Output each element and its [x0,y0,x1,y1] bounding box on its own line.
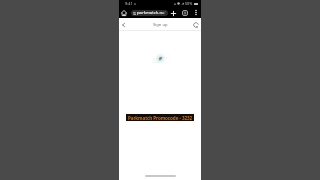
staticText: Sign up [153,22,168,28]
button[interactable]: Parkmatch Promocode - 3232 [126,114,194,121]
button[interactable]: Home [120,9,128,17]
staticText: 50% [185,1,193,6]
staticText: /signup [164,10,168,16]
button[interactable]: New tab [169,9,177,17]
button[interactable]: parkmatch.ru [131,10,168,16]
staticText: parkmatch.ru [137,10,164,16]
staticText: Parkmatch Promocode - 3232 [128,115,192,121]
button[interactable]: Back [119,21,127,29]
button[interactable]: More options [192,9,199,16]
button[interactable]: Switch tabs [181,9,189,17]
staticText: 9:41 [125,1,133,6]
button[interactable]: Refresh [192,21,200,29]
